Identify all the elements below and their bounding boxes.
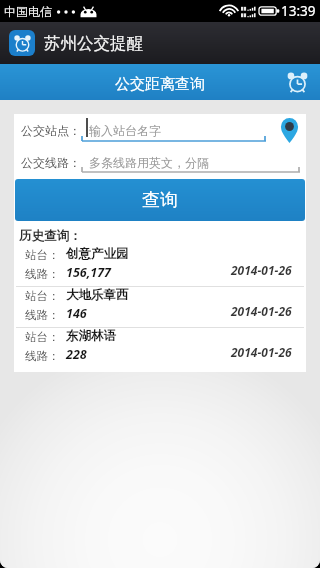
button[interactable]: 输入站台名字	[81, 115, 266, 145]
staticText: 2014-01-26	[231, 344, 292, 360]
staticText: 查询	[142, 189, 178, 212]
button[interactable]: 站台：	[14, 246, 306, 286]
staticText: 13:39	[281, 2, 316, 20]
button[interactable]: 站台：	[14, 287, 306, 327]
button[interactable]: Alarm reminders	[282, 67, 312, 97]
staticText: 大地乐章西	[66, 287, 129, 303]
staticText: 站台：	[25, 289, 60, 303]
button[interactable]: 查询	[15, 179, 305, 221]
staticText: 东湖林语	[66, 328, 116, 344]
staticText: 创意产业园	[66, 246, 129, 262]
staticText: 多条线路用英文，分隔	[89, 155, 209, 170]
button[interactable]: 站台：	[14, 328, 306, 368]
staticText: 苏州公交提醒	[44, 33, 143, 54]
staticText: 历史查询：	[19, 228, 82, 244]
staticText: 公交站点：	[21, 123, 81, 138]
staticText: 线路：	[25, 349, 60, 363]
button[interactable]: 多条线路用英文，分隔	[81, 145, 300, 179]
button[interactable]: Locate nearby stop	[272, 115, 306, 145]
staticText: 输入站台名字	[89, 123, 161, 138]
staticText: 公交距离查询	[115, 75, 205, 94]
staticText: 228	[66, 346, 87, 363]
staticText: 站台：	[25, 248, 60, 262]
staticText: 站台：	[25, 330, 60, 344]
staticText: 2014-01-26	[231, 303, 292, 319]
staticText: 中国电信	[4, 4, 52, 19]
staticText: 线路：	[25, 267, 60, 281]
staticText: 线路：	[25, 308, 60, 322]
staticText: 2014-01-26	[231, 262, 292, 278]
staticText: 156,177	[66, 264, 111, 281]
staticText: 146	[66, 305, 87, 322]
staticText: 公交线路：	[21, 155, 81, 170]
